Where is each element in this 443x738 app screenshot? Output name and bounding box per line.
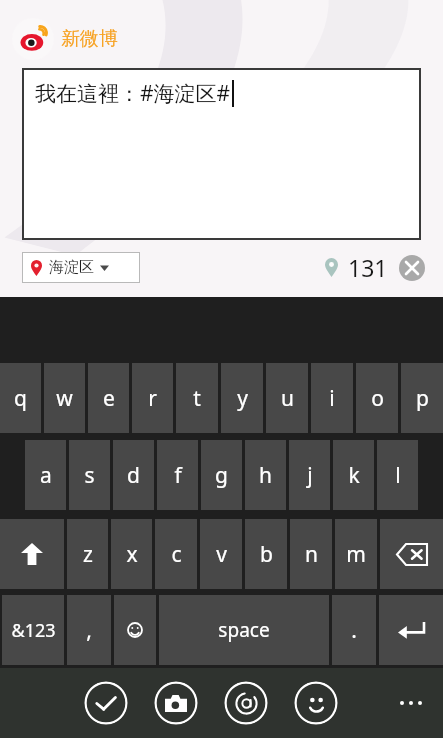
button[interactable]: w — [44, 363, 85, 433]
button[interactable]: y — [221, 363, 263, 433]
button[interactable]: z — [67, 519, 108, 589]
button[interactable]: 海淀区 — [22, 252, 140, 283]
staticText: 新微博 — [61, 27, 118, 51]
staticText: s — [84, 461, 95, 490]
button[interactable]: x — [111, 519, 152, 589]
button[interactable]: b — [245, 519, 287, 589]
staticText: , — [86, 616, 92, 645]
staticText: i — [329, 384, 335, 413]
button[interactable]: e — [88, 363, 129, 433]
button[interactable]: Emoji — [114, 595, 156, 665]
staticText: t — [193, 384, 201, 413]
button[interactable]: Mention — [224, 681, 268, 725]
staticText: m — [346, 540, 366, 569]
staticText: p — [416, 384, 429, 413]
button[interactable]: f — [157, 440, 198, 510]
staticText: y — [237, 384, 248, 413]
staticText: z — [83, 540, 93, 569]
button[interactable]: 我在這裡：#海淀区# — [22, 68, 421, 240]
button[interactable]: , — [67, 595, 111, 665]
button[interactable]: l — [377, 440, 418, 510]
button[interactable]: k — [333, 440, 374, 510]
staticText: . — [351, 616, 357, 645]
staticText: 我在這裡：#海淀区# — [35, 79, 231, 108]
staticText: f — [174, 461, 182, 490]
button[interactable]: space — [159, 595, 329, 665]
staticText: e — [103, 384, 115, 413]
button[interactable]: Post — [84, 681, 128, 725]
button[interactable]: c — [155, 519, 197, 589]
staticText: v — [216, 540, 227, 569]
button[interactable]: j — [289, 440, 330, 510]
staticText: space — [218, 617, 270, 643]
button[interactable]: g — [201, 440, 242, 510]
button[interactable]: a — [25, 440, 66, 510]
staticText: q — [14, 384, 27, 413]
button[interactable]: r — [132, 363, 173, 433]
staticText: &123 — [11, 618, 56, 643]
button[interactable]: Enter — [379, 595, 443, 665]
button[interactable]: n — [290, 519, 332, 589]
button[interactable]: Clear — [399, 255, 425, 281]
button[interactable]: d — [113, 440, 154, 510]
button[interactable]: t — [176, 363, 218, 433]
staticText: a — [40, 461, 52, 490]
button[interactable]: Emoji — [294, 681, 338, 725]
button[interactable]: More options — [389, 681, 433, 725]
button[interactable]: Backspace — [380, 519, 443, 589]
staticText: g — [215, 461, 228, 490]
button[interactable]: &123 — [2, 595, 64, 665]
button[interactable]: h — [245, 440, 286, 510]
staticText: c — [171, 540, 182, 569]
button[interactable]: q — [0, 363, 41, 433]
button[interactable]: v — [200, 519, 242, 589]
button[interactable]: p — [401, 363, 443, 433]
staticText: 海淀区 — [49, 258, 94, 277]
staticText: r — [148, 384, 157, 413]
staticText: l — [395, 461, 401, 490]
button[interactable]: s — [69, 440, 110, 510]
staticText: 131 — [348, 252, 388, 283]
staticText: j — [307, 461, 313, 490]
button[interactable]: . — [332, 595, 376, 665]
staticText: w — [56, 384, 73, 413]
staticText: u — [281, 384, 294, 413]
staticText: h — [259, 461, 272, 490]
staticText: n — [305, 540, 318, 569]
button[interactable]: u — [266, 363, 308, 433]
staticText: x — [126, 540, 138, 569]
button[interactable]: Shift — [0, 519, 64, 589]
button[interactable]: o — [356, 363, 398, 433]
staticText: b — [260, 540, 273, 569]
staticText: o — [371, 384, 384, 413]
staticText: k — [348, 461, 360, 490]
button[interactable]: Camera — [154, 681, 198, 725]
staticText: d — [127, 461, 140, 490]
button[interactable]: m — [335, 519, 377, 589]
button[interactable]: i — [311, 363, 353, 433]
